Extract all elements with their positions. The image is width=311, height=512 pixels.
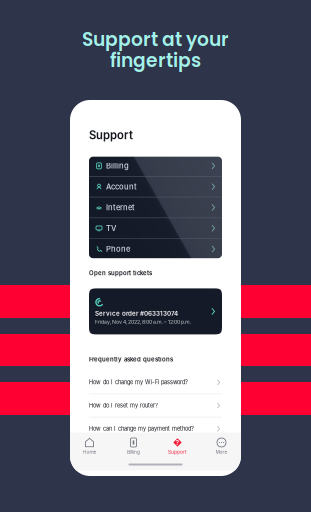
staticText: Service order #063313074: [95, 310, 178, 317]
button[interactable]: Account: [89, 176, 222, 197]
button[interactable]: Phone: [89, 239, 222, 259]
button[interactable]: Billing: [89, 156, 222, 176]
button[interactable]: Home: [71, 436, 107, 456]
button[interactable]: How do I reset my router?: [89, 394, 222, 417]
staticText: Support at your: [82, 26, 229, 52]
staticText: Billing: [127, 449, 140, 455]
button[interactable]: ?: [159, 436, 195, 456]
button[interactable]: How can I change my payment method?: [89, 417, 222, 440]
staticText: Friday, Nov 4, 2022, 8:00 a.m. – 12:00 p…: [95, 319, 191, 325]
staticText: Open support tickets: [89, 269, 152, 277]
staticText: More: [215, 449, 227, 455]
staticText: How do I reset my router?: [89, 402, 158, 409]
button[interactable]: Internet: [89, 197, 222, 218]
staticText: Billing: [106, 161, 129, 170]
button[interactable]: TV: [89, 218, 222, 238]
staticText: Frequently asked questions: [89, 356, 173, 363]
staticText: TV: [106, 224, 116, 233]
staticText: Account: [106, 182, 137, 191]
staticText: Support: [89, 128, 133, 142]
staticText: Home: [82, 449, 96, 455]
staticText: fingertips: [110, 47, 201, 73]
staticText: How can I change my payment method?: [89, 425, 194, 432]
staticText: Internet: [106, 203, 135, 212]
staticText: Phone: [106, 244, 130, 254]
button[interactable]: Service order #063313074: [89, 288, 222, 334]
staticText: How do I change my Wi-Fi password?: [89, 379, 188, 386]
staticText: Support: [168, 449, 187, 455]
button[interactable]: Billing: [115, 436, 151, 456]
staticText: ?: [175, 438, 179, 447]
button[interactable]: More: [203, 436, 239, 456]
button[interactable]: How do I change my Wi-Fi password?: [89, 371, 222, 394]
